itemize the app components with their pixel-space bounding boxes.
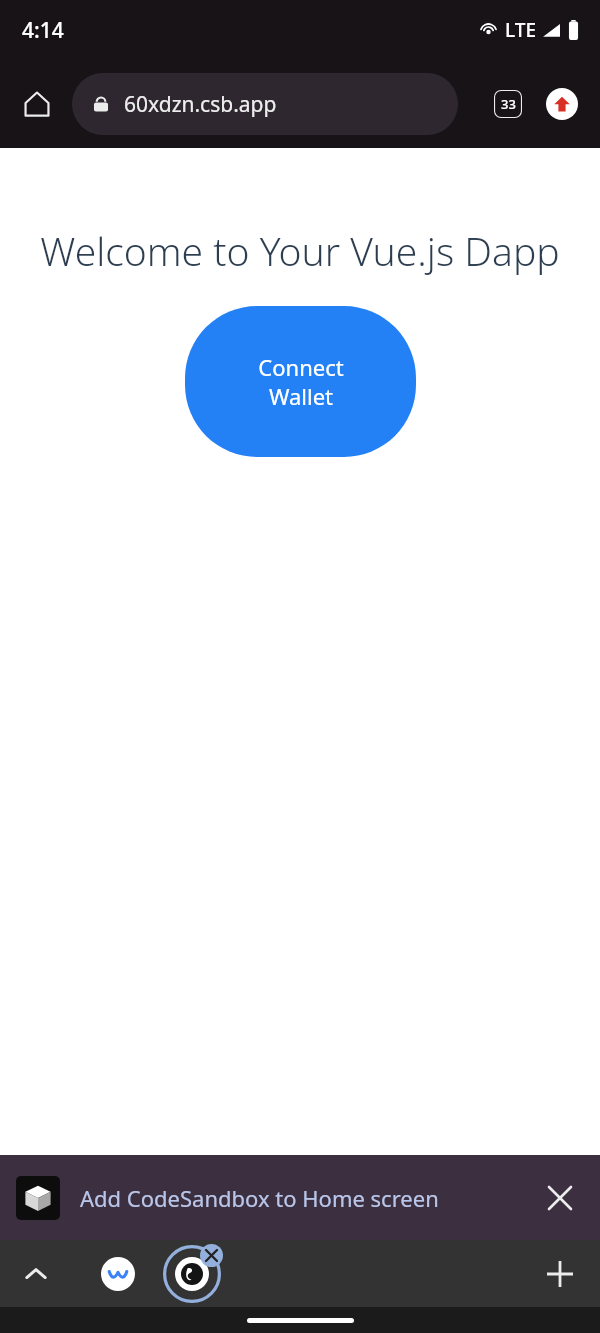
staticText: 33 bbox=[501, 95, 516, 113]
button[interactable]: Update available bbox=[538, 80, 586, 128]
staticText: Welcome to Your Vue.js Dapp bbox=[40, 224, 560, 277]
button[interactable]: 60xdzn.csb.app bbox=[72, 73, 458, 135]
button[interactable]: New tab bbox=[534, 1248, 586, 1300]
button[interactable]: Tabs, 33 open bbox=[484, 80, 532, 128]
staticText: Add CodeSandbox to Home screen bbox=[80, 1183, 536, 1213]
button[interactable]: Expand bbox=[12, 1250, 60, 1298]
button[interactable]: Current tab bbox=[160, 1242, 224, 1306]
button[interactable]: Add CodeSandbox to Home screen bbox=[0, 1155, 600, 1240]
staticText: 4:14 bbox=[22, 16, 64, 45]
staticText: 60xdzn.csb.app bbox=[124, 90, 277, 119]
staticText: LTE bbox=[505, 17, 537, 43]
button[interactable]: Wallet tab bbox=[92, 1248, 144, 1300]
button[interactable]: Dismiss bbox=[536, 1174, 584, 1222]
button[interactable]: Connect Wallet bbox=[185, 306, 416, 457]
staticText: Connect Wallet bbox=[236, 352, 366, 411]
button[interactable]: Close tab bbox=[200, 1244, 223, 1267]
button[interactable]: Home bbox=[12, 79, 62, 129]
